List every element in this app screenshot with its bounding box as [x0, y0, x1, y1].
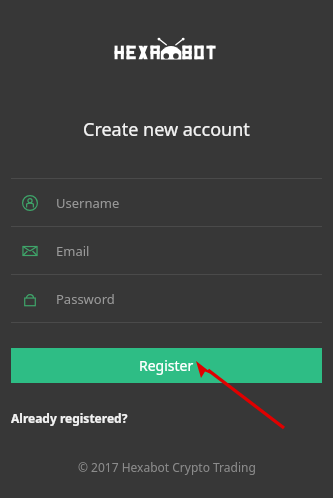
- staticText: Username: [56, 194, 120, 212]
- button[interactable]: Username: [0, 179, 333, 226]
- button[interactable]: Email: [0, 227, 333, 274]
- staticText: Create new account: [83, 117, 250, 142]
- staticText: © 2017 Hexabot Crypto Trading: [78, 459, 256, 475]
- button[interactable]: Register: [11, 348, 322, 383]
- staticText: Email: [56, 242, 90, 260]
- button[interactable]: Password: [0, 275, 333, 322]
- button[interactable]: Already registered?: [11, 410, 128, 426]
- staticText: Already registered?: [11, 410, 128, 426]
- staticText: Register: [139, 356, 194, 375]
- staticText: Password: [56, 290, 115, 308]
- other: Hexabot logo: [77, 30, 257, 64]
